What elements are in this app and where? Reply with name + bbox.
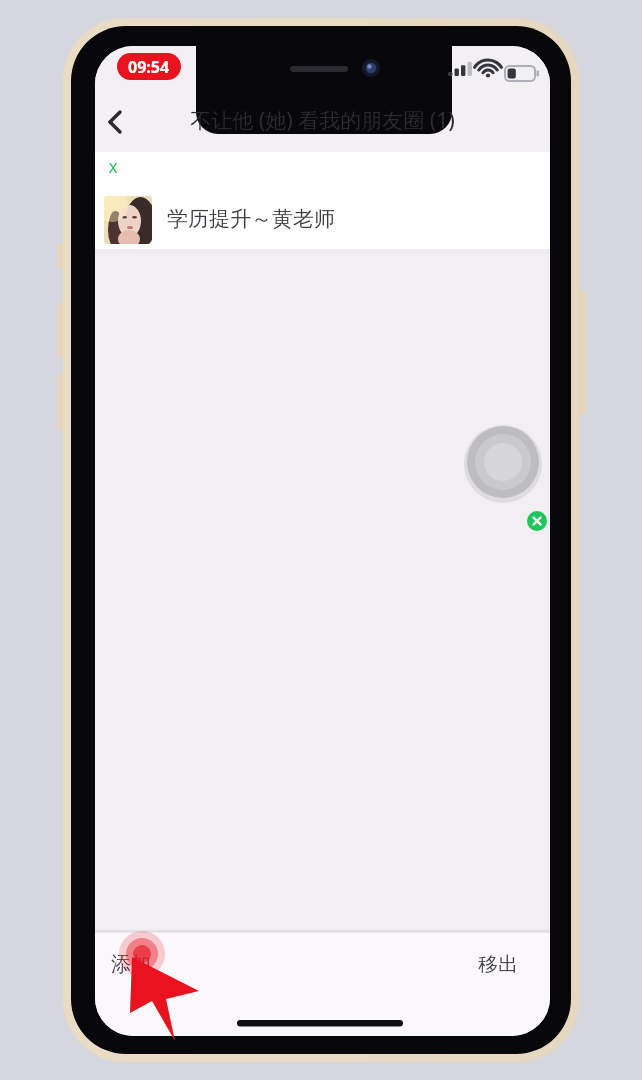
staticText: X <box>109 158 118 177</box>
button[interactable]: 返回 <box>96 99 142 145</box>
staticText: 移出 <box>478 952 518 977</box>
staticText: 不让他 (她) 看我的朋友圈 (1) <box>190 106 455 135</box>
staticText: 添加 <box>111 952 151 977</box>
button[interactable]: 移出 <box>440 934 550 994</box>
button[interactable]: 学历提升～黄老师 <box>95 186 550 252</box>
staticText: 09:54 <box>128 56 170 78</box>
button[interactable]: 悬浮球 <box>467 426 539 498</box>
button[interactable]: 添加 <box>95 934 235 994</box>
staticText: 学历提升～黄老师 <box>167 206 335 232</box>
button[interactable]: 关闭 <box>526 510 548 532</box>
